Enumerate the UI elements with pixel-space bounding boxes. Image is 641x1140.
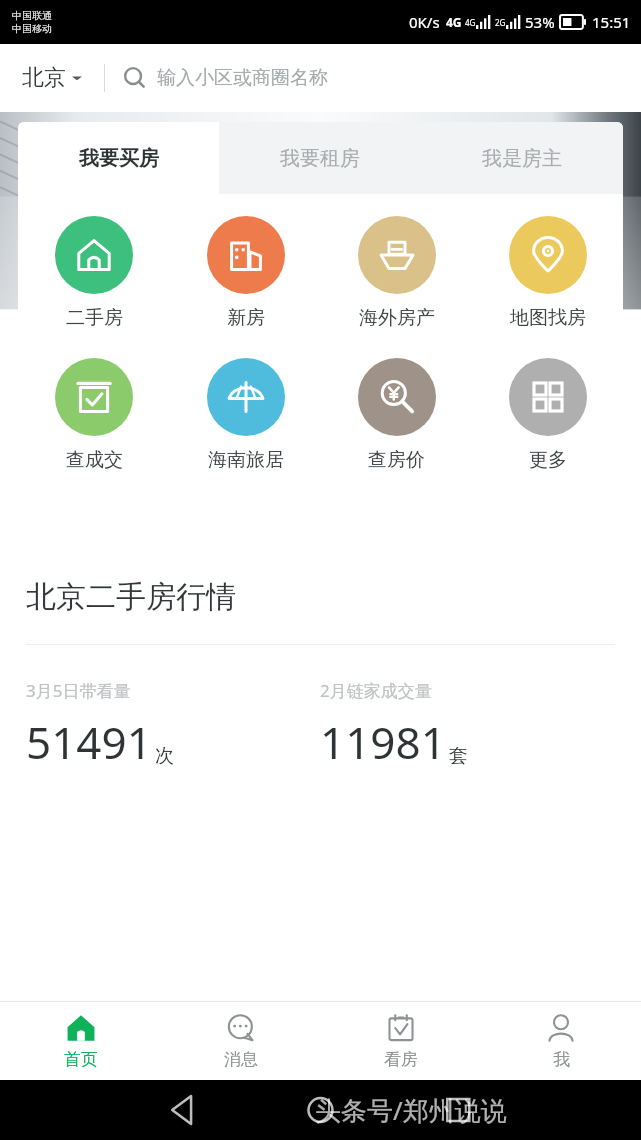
button[interactable]: 我 — [481, 1002, 641, 1080]
staticText: 二手房 — [66, 306, 123, 330]
staticText: 4G — [446, 14, 462, 30]
button[interactable]: 消息 — [161, 1002, 321, 1080]
staticText: 北京 — [22, 64, 66, 92]
staticText: 新房 — [227, 306, 265, 330]
button[interactable]: 我要租房 — [219, 122, 421, 194]
staticText: 更多 — [529, 448, 567, 472]
staticText: 我 — [553, 1049, 570, 1070]
staticText: 看房 — [384, 1049, 418, 1070]
staticText: 4G — [465, 17, 476, 28]
button[interactable]: 新房 — [170, 216, 321, 330]
staticText: 我是房主 — [482, 146, 562, 171]
staticText: 输入小区或商圈名称 — [157, 66, 328, 90]
staticText: 中国联通 — [12, 9, 52, 22]
button[interactable]: 查房价 — [321, 358, 472, 472]
button[interactable]: 北京 — [22, 64, 86, 92]
button[interactable]: 查成交 — [18, 358, 170, 472]
staticText: 15:51 — [592, 12, 631, 32]
button[interactable]: 输入小区或商圈名称 — [123, 44, 619, 112]
staticText: 我要租房 — [280, 146, 360, 171]
button[interactable]: 地图找房 — [472, 216, 623, 330]
staticText: 套 — [449, 744, 468, 768]
staticText: 53% — [525, 12, 555, 32]
staticText: 消息 — [224, 1049, 258, 1070]
button[interactable]: 首页 — [0, 1002, 161, 1080]
staticText: 中国移动 — [12, 22, 52, 35]
staticText: 2G — [495, 17, 506, 28]
button[interactable]: 我要买房 — [18, 122, 219, 194]
staticText: 0K/s — [409, 12, 440, 32]
staticText: 头条号/郑州说说 — [315, 1092, 507, 1128]
staticText: 51491 — [26, 712, 152, 772]
staticText: 海南旅居 — [208, 448, 284, 472]
staticText: 首页 — [64, 1049, 98, 1070]
button[interactable]: 看房 — [321, 1002, 481, 1080]
staticText: 2月链家成交量 — [320, 679, 432, 702]
button[interactable]: 更多 — [472, 358, 623, 472]
button[interactable]: 海南旅居 — [170, 358, 321, 472]
staticText: 次 — [155, 744, 174, 768]
button[interactable]: 海外房产 — [321, 216, 472, 330]
staticText: 3月5日带看量 — [26, 679, 131, 702]
staticText: 我要买房 — [79, 146, 159, 171]
staticText: 海外房产 — [359, 306, 435, 330]
staticText: 11981 — [320, 712, 446, 772]
staticText: 查成交 — [66, 448, 123, 472]
staticText: 查房价 — [368, 448, 425, 472]
staticText: 北京二手房行情 — [26, 578, 236, 616]
staticText: 地图找房 — [510, 306, 586, 330]
button[interactable]: 二手房 — [18, 216, 170, 330]
button[interactable]: 我是房主 — [421, 122, 623, 194]
